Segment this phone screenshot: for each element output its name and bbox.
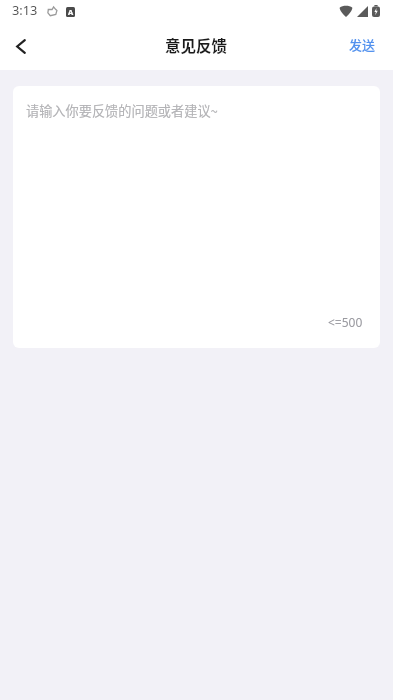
button[interactable]: 发送	[333, 26, 393, 70]
staticText: A	[68, 7, 74, 17]
staticText: 发送	[349, 35, 376, 54]
staticText: 3:13	[12, 1, 38, 18]
staticText: 请输入你要反馈的问题或者建议~	[26, 101, 218, 120]
button[interactable]: Back	[0, 27, 42, 69]
staticText: 意见反馈	[165, 34, 228, 56]
staticText: <=500	[328, 314, 363, 330]
button[interactable]: 请输入你要反馈的问题或者建议~	[13, 86, 380, 348]
